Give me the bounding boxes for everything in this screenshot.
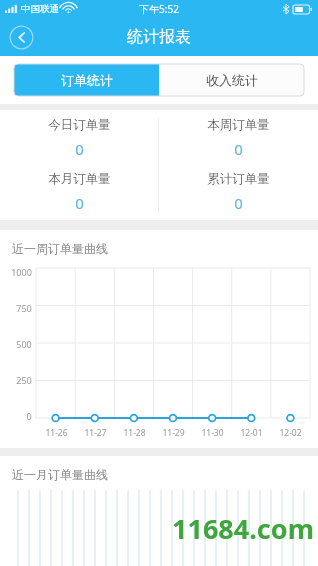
staticText: 订单统计: [61, 72, 113, 88]
staticText: 近一月订单量曲线: [12, 467, 108, 482]
staticText: 11684.com: [172, 510, 314, 547]
staticText: 0: [75, 139, 84, 159]
staticText: 11-30: [201, 427, 224, 439]
staticText: 累计订单量: [207, 171, 270, 187]
staticText: 11-28: [123, 427, 146, 439]
staticText: 近一周订单量曲线: [12, 241, 108, 256]
button[interactable]: 订单统计: [14, 64, 159, 96]
staticText: 收入统计: [206, 72, 258, 88]
staticText: 本周订单量: [207, 117, 270, 133]
staticText: 12-01: [240, 427, 263, 439]
staticText: 750: [16, 302, 32, 314]
staticText: 0: [234, 139, 243, 159]
staticText: 今日订单量: [48, 117, 111, 133]
staticText: 500: [16, 338, 32, 350]
staticText: 统计报表: [127, 27, 191, 47]
button[interactable]: Back: [9, 25, 34, 50]
staticText: 0: [26, 410, 32, 422]
staticText: 0: [234, 193, 243, 213]
staticText: 中国联通: [21, 3, 59, 15]
staticText: 11-29: [162, 427, 185, 439]
staticText: 本月订单量: [48, 171, 111, 187]
staticText: 12-02: [279, 427, 302, 439]
staticText: 250: [16, 374, 32, 386]
button[interactable]: 收入统计: [159, 64, 304, 96]
staticText: 下午5:52: [139, 2, 179, 16]
staticText: 0: [75, 193, 84, 213]
staticText: 1000: [11, 266, 32, 278]
staticText: 11-26: [45, 427, 68, 439]
staticText: 11-27: [84, 427, 107, 439]
